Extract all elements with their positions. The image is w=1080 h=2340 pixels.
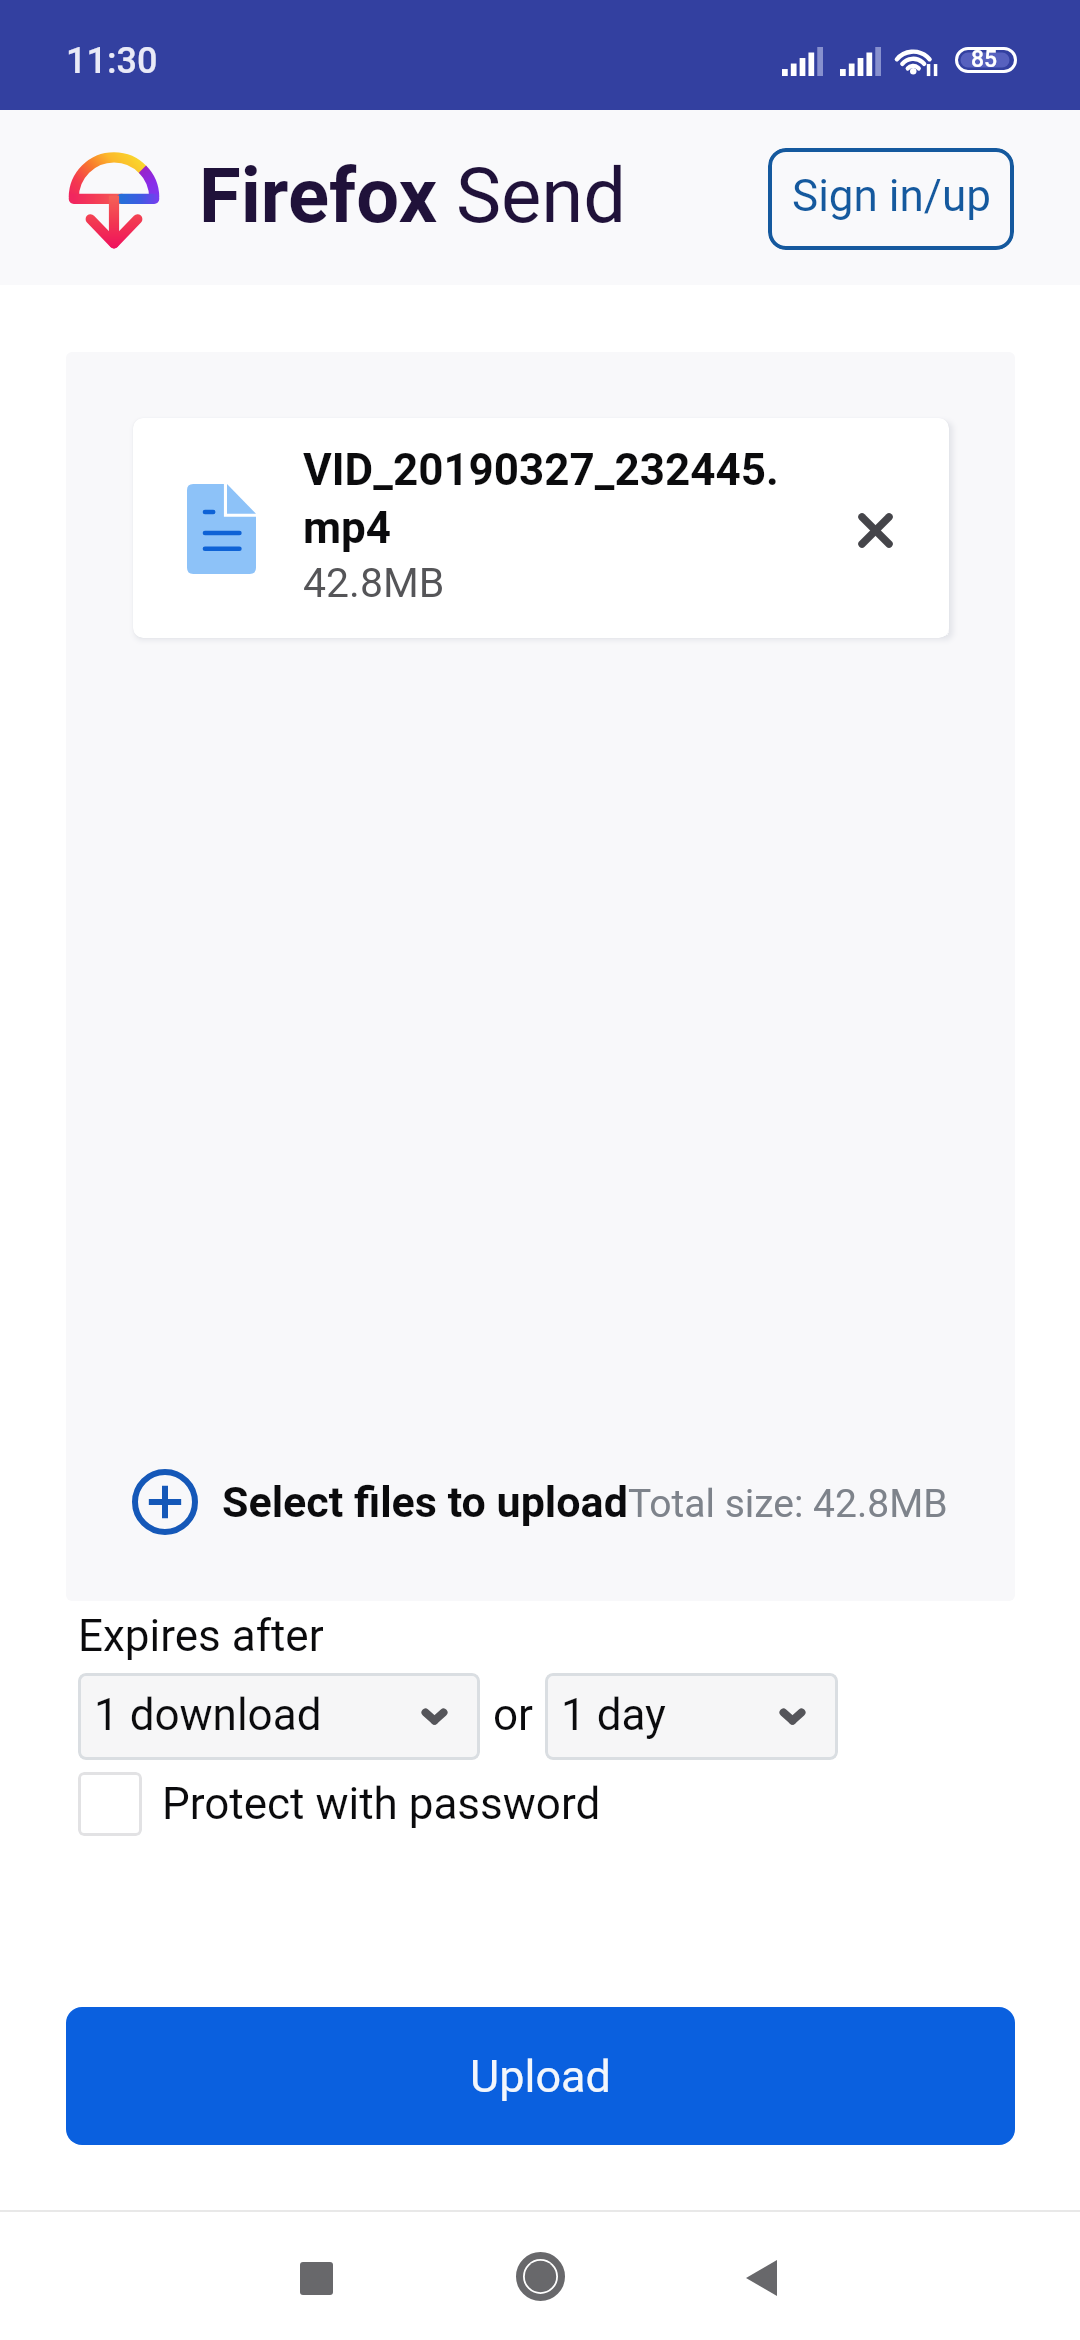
staticText: Protect with password xyxy=(162,1778,601,1830)
button[interactable]: Back xyxy=(721,2238,801,2318)
button[interactable]: Recent apps xyxy=(276,2238,356,2318)
button[interactable]: 1 download xyxy=(78,1673,480,1760)
button[interactable]: Upload xyxy=(66,2007,1015,2145)
button[interactable]: Home xyxy=(500,2236,580,2316)
staticText: 42.8MB xyxy=(303,559,445,607)
staticText: 11:30 xyxy=(66,40,158,82)
staticText: 1 download xyxy=(94,1689,322,1741)
staticText: Expires after xyxy=(78,1610,324,1662)
staticText: VID_20190327_232445. mp4 xyxy=(303,444,779,554)
button[interactable]: Remove file xyxy=(833,488,917,572)
staticText: or xyxy=(493,1689,534,1741)
staticText: Firefox Send xyxy=(199,151,627,240)
button[interactable]: Protect with password xyxy=(78,1772,601,1836)
staticText: Select files to uploadTotal size: 42.8MB xyxy=(222,1477,948,1527)
staticText: 85 xyxy=(971,46,998,72)
button[interactable]: 1 day xyxy=(545,1673,838,1760)
staticText: Sign in/up xyxy=(792,170,991,222)
staticText: Upload xyxy=(470,2050,611,2103)
button[interactable]: Sign in/up xyxy=(768,148,1014,250)
button[interactable]: Select files to uploadTotal size: 42.8MB xyxy=(132,1469,948,1535)
staticText: 1 day xyxy=(561,1689,666,1741)
